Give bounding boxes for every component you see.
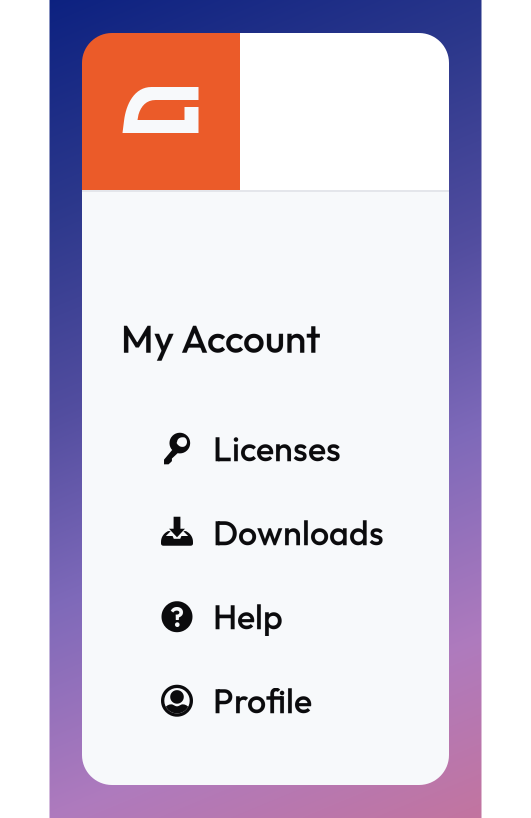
button[interactable]: Downloads: [161, 509, 451, 557]
button[interactable]: ?: [161, 593, 451, 641]
button[interactable]: Licenses: [161, 425, 451, 473]
button[interactable]: Profile: [161, 677, 451, 725]
staticText: Help: [213, 595, 283, 638]
staticText: My Account: [121, 314, 321, 363]
staticText: Licenses: [213, 427, 341, 470]
staticText: ?: [170, 599, 184, 634]
staticText: Downloads: [213, 511, 384, 554]
staticText: Profile: [213, 679, 312, 722]
